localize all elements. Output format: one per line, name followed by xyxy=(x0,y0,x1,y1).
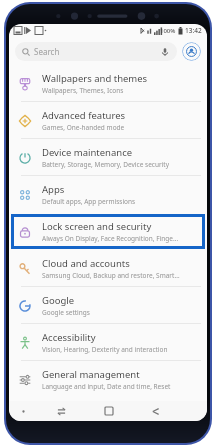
button[interactable]: Recents xyxy=(38,401,85,421)
button[interactable]: Voice search xyxy=(160,47,170,57)
button[interactable]: Search xyxy=(15,42,177,61)
staticText: Games, One-handed mode xyxy=(42,123,125,132)
staticText: Accessibility xyxy=(42,331,96,344)
staticText: Language and input, Date and time, Reset xyxy=(42,382,171,391)
button[interactable]: Lock screen and security xyxy=(9,213,207,250)
staticText: General management xyxy=(42,368,140,381)
staticText: Always On Display, Face Recognition, Fin… xyxy=(42,234,179,243)
staticText: Vision, Hearing, Dexterity and interacti… xyxy=(42,345,168,354)
button[interactable]: Google xyxy=(9,287,207,324)
staticText: Wallpapers and themes xyxy=(42,72,148,85)
button[interactable]: Device maintenance xyxy=(9,139,207,176)
staticText: Device maintenance xyxy=(42,146,133,159)
staticText: Lock screen and security xyxy=(42,220,152,233)
button[interactable]: Apps xyxy=(9,176,207,213)
button[interactable]: Accessibility xyxy=(9,324,207,361)
button[interactable]: Advanced features xyxy=(9,102,207,139)
staticText: Battery, Storage, Memory, Device securit… xyxy=(42,160,169,169)
button[interactable]: Wallpapers and themes xyxy=(9,65,207,102)
staticText: 100% xyxy=(160,27,176,35)
staticText: Default apps, App permissions xyxy=(42,197,136,206)
staticText: 13:42 xyxy=(185,26,202,35)
staticText: Apps xyxy=(42,183,65,196)
staticText: Wallpapers, Themes, Icons xyxy=(42,86,124,95)
button[interactable]: Cloud and accounts xyxy=(9,250,207,287)
staticText: Advanced features xyxy=(42,109,126,122)
staticText: Google settings xyxy=(42,308,90,317)
staticText: Cloud and accounts xyxy=(42,257,130,270)
staticText: Samsung Cloud, Backup and restore, Smart… xyxy=(42,271,180,280)
button[interactable]: Home xyxy=(85,401,132,421)
staticText: Search xyxy=(34,46,60,57)
button[interactable]: Account xyxy=(182,42,201,61)
staticText: Google xyxy=(42,294,75,307)
button[interactable]: Back xyxy=(132,401,179,421)
button[interactable]: General management xyxy=(9,361,207,398)
